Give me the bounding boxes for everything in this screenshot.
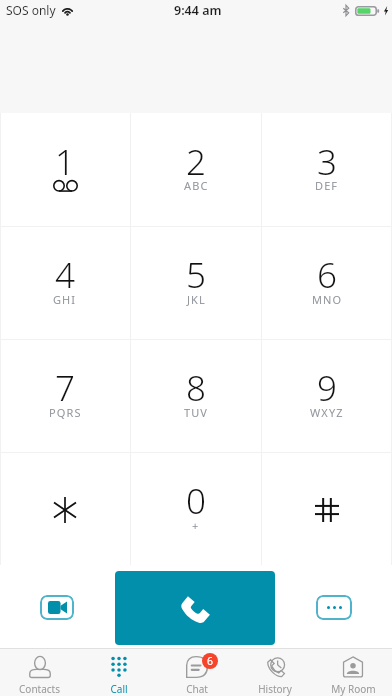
staticText: 7 <box>55 364 75 412</box>
staticText: My Room <box>331 682 376 696</box>
staticText: ABC <box>184 178 209 193</box>
button[interactable]: 0 <box>131 453 261 565</box>
staticText: 6 <box>207 654 214 668</box>
button[interactable]: 1 <box>0 113 130 226</box>
staticText: 1 <box>55 138 75 186</box>
staticText: DEF <box>315 178 339 193</box>
staticText: 3 <box>317 138 337 186</box>
staticText: 4 <box>55 251 75 299</box>
staticText: 6 <box>317 251 337 299</box>
button[interactable]: 6 <box>262 227 392 339</box>
button[interactable]: 9 <box>262 340 392 452</box>
staticText: GHI <box>53 292 77 307</box>
staticText: TUV <box>184 405 209 420</box>
button[interactable]: 4 <box>0 227 130 339</box>
staticText: PQRS <box>49 405 82 420</box>
staticText: History <box>258 682 292 696</box>
button[interactable]: 8 <box>131 340 261 452</box>
staticText: Call <box>110 682 128 696</box>
staticText: 5 <box>186 251 206 299</box>
button[interactable] <box>0 453 130 565</box>
button[interactable]: History <box>236 649 314 696</box>
button[interactable]: More options <box>316 595 352 620</box>
staticText: JKL <box>187 292 206 307</box>
staticText: WXYZ <box>310 405 344 420</box>
button[interactable]: Contacts <box>0 649 79 696</box>
button[interactable] <box>262 453 392 565</box>
staticText: + <box>192 518 200 533</box>
staticText: SOS only <box>6 2 56 18</box>
button[interactable]: My Room <box>314 649 392 696</box>
button[interactable]: 5 <box>131 227 261 339</box>
staticText: 0 <box>186 477 206 525</box>
button[interactable]: Call <box>79 649 158 696</box>
staticText: MNO <box>312 292 343 307</box>
staticText: 9 <box>317 364 337 412</box>
button[interactable]: 6 <box>158 649 236 696</box>
staticText: Contacts <box>19 682 60 696</box>
button[interactable]: Call <box>115 571 275 645</box>
staticText: 8 <box>186 364 206 412</box>
button[interactable]: Video call <box>40 595 74 620</box>
staticText: 9:44 am <box>174 2 222 19</box>
staticText: Chat <box>186 682 208 696</box>
button[interactable]: 7 <box>0 340 130 452</box>
button[interactable]: 3 <box>262 113 392 226</box>
button[interactable]: 2 <box>131 113 261 226</box>
staticText: 2 <box>186 138 206 186</box>
